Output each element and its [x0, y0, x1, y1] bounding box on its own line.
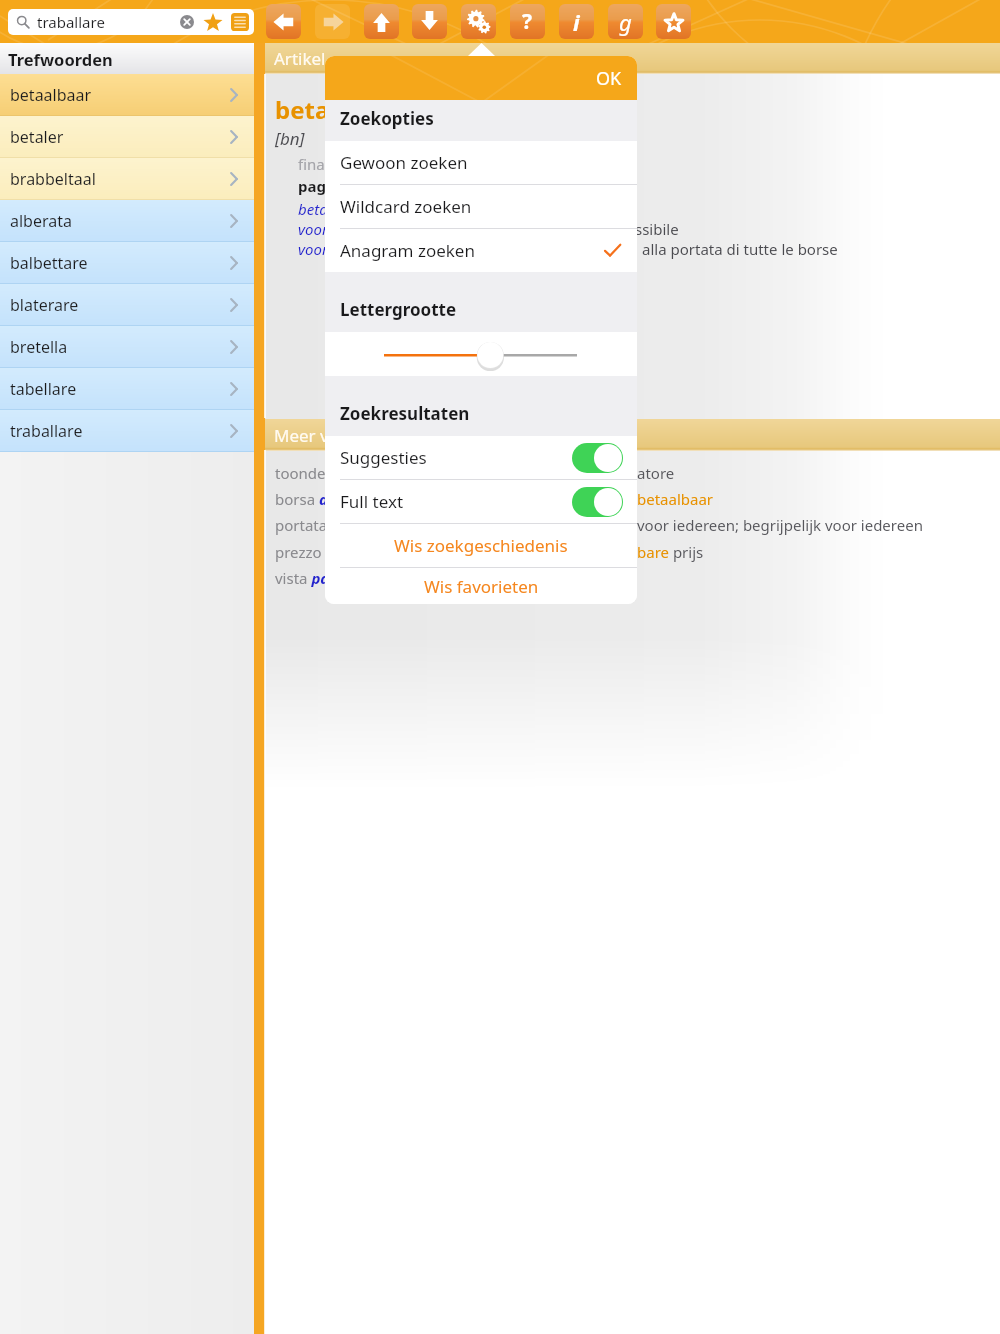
staticText: toonder al portatore [275, 463, 422, 483]
staticText: betaalbaar [298, 199, 372, 219]
staticText: Anagram zoeken [340, 239, 475, 262]
button[interactable]: tabellare [0, 368, 254, 410]
button[interactable]: Wis zoekgeschiedenis [325, 524, 637, 567]
staticText: pagabile [298, 176, 363, 196]
staticText: g [619, 7, 632, 37]
button[interactable]: Anagram zoeken [325, 229, 637, 272]
button[interactable]: Favorites [656, 4, 691, 39]
staticText: voordelig; toegankelijk [298, 219, 449, 239]
staticText: vista pagabile a vista [275, 568, 425, 588]
staticText: balbettare [10, 252, 88, 274]
staticText: Zoekresultaten [340, 402, 470, 425]
button[interactable]: alberata [0, 200, 254, 242]
button[interactable]: Previous [364, 4, 399, 39]
staticText: i [573, 7, 580, 37]
button[interactable]: History [231, 13, 249, 31]
button[interactable]: betaalbaar [0, 74, 254, 116]
staticText: Wis favorieten [424, 575, 539, 598]
staticText: portata alla portata di tutti [275, 515, 469, 535]
button[interactable]: Help [510, 4, 545, 39]
staticText: bare prijs [637, 542, 704, 562]
staticText: voor iedereen; begrijpelijk voor iederee… [637, 515, 923, 535]
staticText: Meer vertalingen [274, 424, 411, 447]
staticText: finanz. [298, 154, 346, 174]
staticText: betaalbaar [275, 93, 406, 126]
staticText: blaterare [10, 294, 79, 316]
staticText: tabellare [10, 378, 77, 400]
button[interactable]: Google [608, 4, 643, 39]
button[interactable]: Full text [325, 480, 637, 523]
staticText: Artikel [274, 47, 326, 70]
button[interactable]: Clear search [180, 15, 194, 29]
staticText: Suggesties [340, 446, 427, 469]
staticText: betaalbaar [637, 489, 714, 509]
staticText: alberata [10, 210, 72, 232]
staticText: atore [637, 463, 675, 483]
staticText: voordelig; betaalbaar [298, 239, 442, 259]
staticText: traballare [37, 12, 105, 32]
staticText: borsa alla portata di tutti [275, 489, 457, 509]
button[interactable]: bretella [0, 326, 254, 368]
staticText: prezzo accessibile [275, 542, 403, 562]
button[interactable]: betaler [0, 116, 254, 158]
staticText: brabbeltaal [10, 168, 96, 190]
staticText: Wis zoekgeschiedenis [394, 534, 568, 557]
staticText: alla portata di tutte le borse [642, 239, 838, 259]
staticText: ? [522, 7, 533, 36]
button[interactable]: Gewoon zoeken [325, 141, 637, 184]
button[interactable]: Wildcard zoeken [325, 185, 637, 228]
button[interactable]: Next [412, 4, 447, 39]
button[interactable]: Forward [315, 4, 350, 39]
button[interactable]: balbettare [0, 242, 254, 284]
button[interactable]: Info [559, 4, 594, 39]
button[interactable]: Back [266, 4, 301, 39]
button[interactable]: Settings [461, 4, 496, 39]
button[interactable]: Suggesties [325, 436, 637, 479]
staticText: Full text [340, 490, 404, 513]
staticText: Wildcard zoeken [340, 195, 472, 218]
staticText: betaalbaar [10, 84, 92, 106]
button[interactable]: Wis favorieten [325, 568, 637, 604]
staticText: [bn] [275, 127, 305, 150]
button[interactable]: Favorites [203, 12, 223, 32]
button[interactable]: blaterare [0, 284, 254, 326]
staticText: Lettergrootte [340, 298, 457, 321]
button[interactable]: traballare [8, 9, 254, 35]
staticText: OK [596, 66, 622, 91]
staticText: Trefwoorden [8, 48, 113, 70]
button[interactable]: traballare [0, 410, 254, 452]
staticText: bretella [10, 336, 68, 358]
staticText: traballare [10, 420, 83, 442]
staticText: betaler [10, 126, 64, 148]
staticText: Gewoon zoeken [340, 151, 468, 174]
button[interactable]: brabbeltaal [0, 158, 254, 200]
staticText: Zoekopties [340, 107, 434, 130]
staticText: ssibile [635, 219, 679, 239]
